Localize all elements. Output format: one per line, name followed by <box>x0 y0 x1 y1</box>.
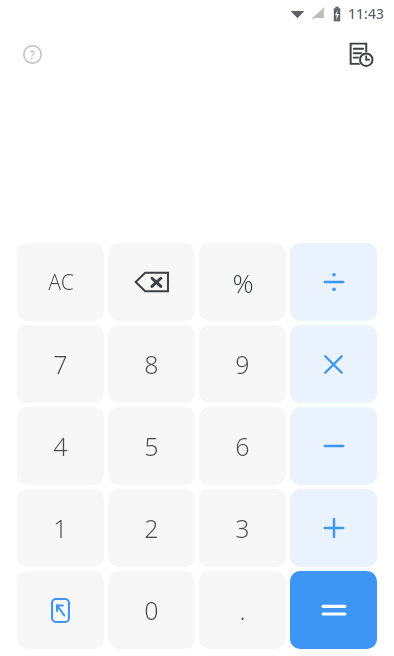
button[interactable]: Multiply <box>290 325 377 403</box>
staticText: 2 <box>144 511 159 545</box>
button[interactable]: Plus <box>290 489 377 567</box>
button[interactable]: Backspace <box>108 243 195 321</box>
button[interactable]: History <box>340 34 380 74</box>
staticText: . <box>239 593 246 627</box>
button[interactable]: Minus <box>290 407 377 485</box>
button[interactable]: 7 <box>17 325 104 403</box>
staticText: 1 <box>53 511 68 545</box>
button[interactable]: 9 <box>199 325 286 403</box>
button[interactable]: 5 <box>108 407 195 485</box>
button[interactable]: 8 <box>108 325 195 403</box>
button[interactable]: Help <box>16 38 48 70</box>
staticText: 9 <box>235 347 250 381</box>
button[interactable]: 2 <box>108 489 195 567</box>
staticText: % <box>232 265 254 300</box>
button[interactable]: 6 <box>199 407 286 485</box>
button[interactable]: Expand <box>17 571 104 649</box>
staticText: 0 <box>144 593 159 627</box>
staticText: ? <box>30 47 35 62</box>
button[interactable]: 0 <box>108 571 195 649</box>
staticText: 11:43 <box>348 4 384 23</box>
staticText: 3 <box>235 511 250 545</box>
button[interactable]: % <box>199 243 286 321</box>
button[interactable]: . <box>199 571 286 649</box>
staticText: 4 <box>53 429 68 463</box>
button[interactable]: 3 <box>199 489 286 567</box>
button[interactable]: 1 <box>17 489 104 567</box>
staticText: 8 <box>144 347 159 381</box>
staticText: AC <box>48 268 74 297</box>
button[interactable]: 4 <box>17 407 104 485</box>
staticText: 5 <box>144 429 159 463</box>
button[interactable]: AC <box>17 243 104 321</box>
button[interactable]: Equals <box>290 571 377 649</box>
staticText: 6 <box>235 429 250 463</box>
button[interactable]: Divide <box>290 243 377 321</box>
staticText: 7 <box>53 347 68 381</box>
